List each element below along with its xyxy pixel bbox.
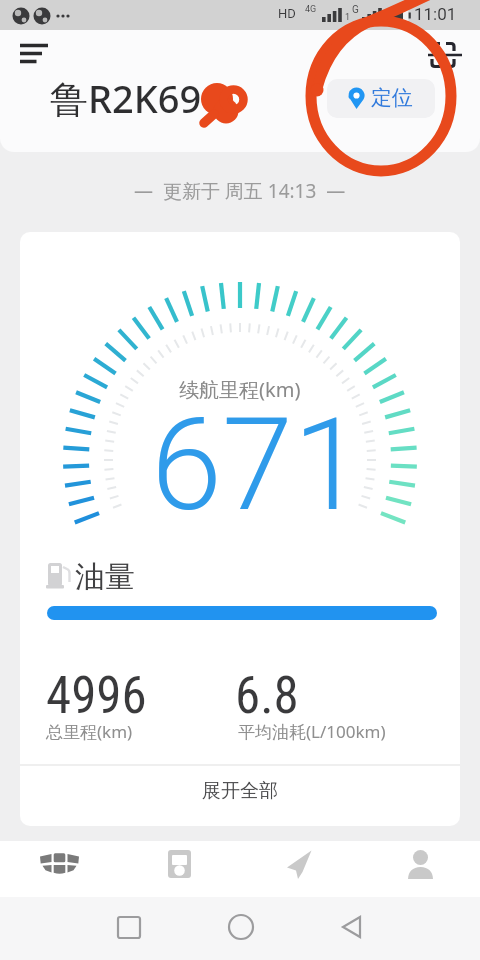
- staticText: 4G: [305, 4, 317, 15]
- button[interactable]: [160, 897, 320, 960]
- staticText: 总里程(km): [46, 720, 133, 743]
- staticText: 定位: [371, 85, 413, 111]
- staticText: 续航里程(km): [179, 376, 301, 403]
- staticText: 4996: [46, 666, 147, 726]
- staticText: 671: [151, 390, 364, 540]
- button[interactable]: [424, 38, 470, 70]
- button[interactable]: [0, 841, 120, 897]
- button[interactable]: 定位: [327, 79, 435, 118]
- staticText: HD: [278, 6, 296, 21]
- button[interactable]: [12, 36, 56, 68]
- staticText: 11:01: [414, 4, 457, 24]
- staticText: 1: [345, 12, 351, 23]
- staticText: 展开全部: [202, 779, 278, 803]
- button[interactable]: [320, 897, 480, 960]
- staticText: G: [352, 4, 359, 16]
- staticText: 鲁R2K69: [50, 72, 202, 124]
- button[interactable]: [240, 841, 360, 897]
- staticText: 平均油耗(L/100km): [238, 720, 386, 743]
- button[interactable]: 展开全部: [20, 763, 460, 818]
- staticText: 油量: [75, 558, 135, 596]
- button[interactable]: [0, 897, 160, 960]
- staticText: 6.8: [235, 666, 299, 726]
- button[interactable]: [360, 841, 480, 897]
- staticText: — 更新于 周五 14:13 —: [134, 178, 346, 204]
- button[interactable]: [120, 841, 240, 897]
